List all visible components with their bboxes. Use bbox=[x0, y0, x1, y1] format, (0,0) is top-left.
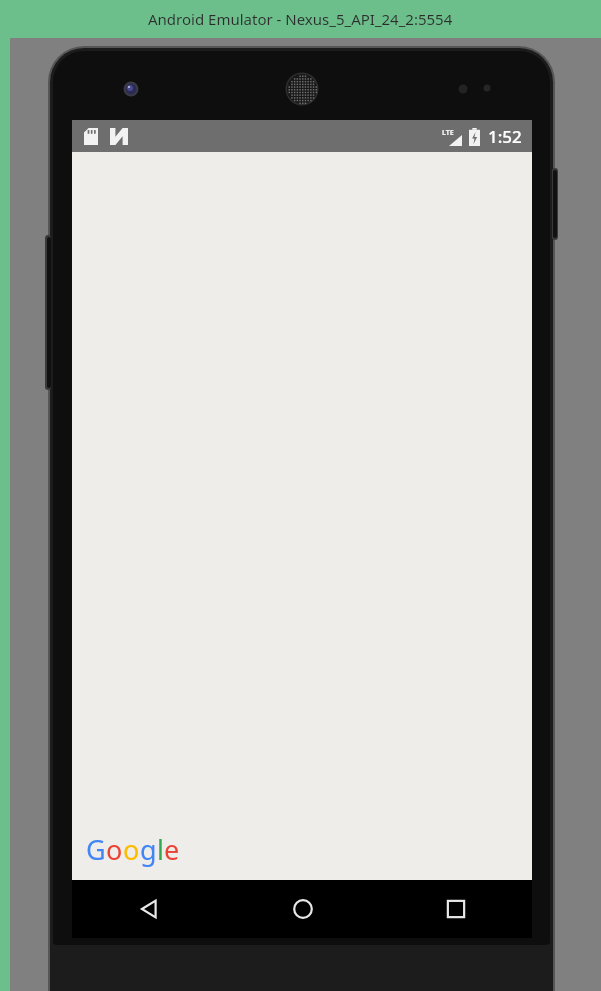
staticText: G bbox=[86, 831, 106, 868]
staticText: l bbox=[157, 831, 164, 868]
button[interactable]: Recent apps bbox=[379, 880, 532, 938]
staticText: e bbox=[164, 831, 180, 868]
button[interactable]: Home bbox=[226, 880, 379, 938]
staticText: Android Emulator - Nexus_5_API_24_2:5554 bbox=[148, 9, 453, 29]
staticText: o bbox=[123, 831, 140, 868]
button[interactable]: Back bbox=[72, 880, 226, 938]
staticText: o bbox=[106, 831, 123, 868]
button[interactable]: G bbox=[82, 831, 184, 868]
staticText: g bbox=[140, 831, 157, 868]
staticText: 1:52 bbox=[488, 125, 522, 148]
staticText: LTE bbox=[442, 128, 454, 138]
